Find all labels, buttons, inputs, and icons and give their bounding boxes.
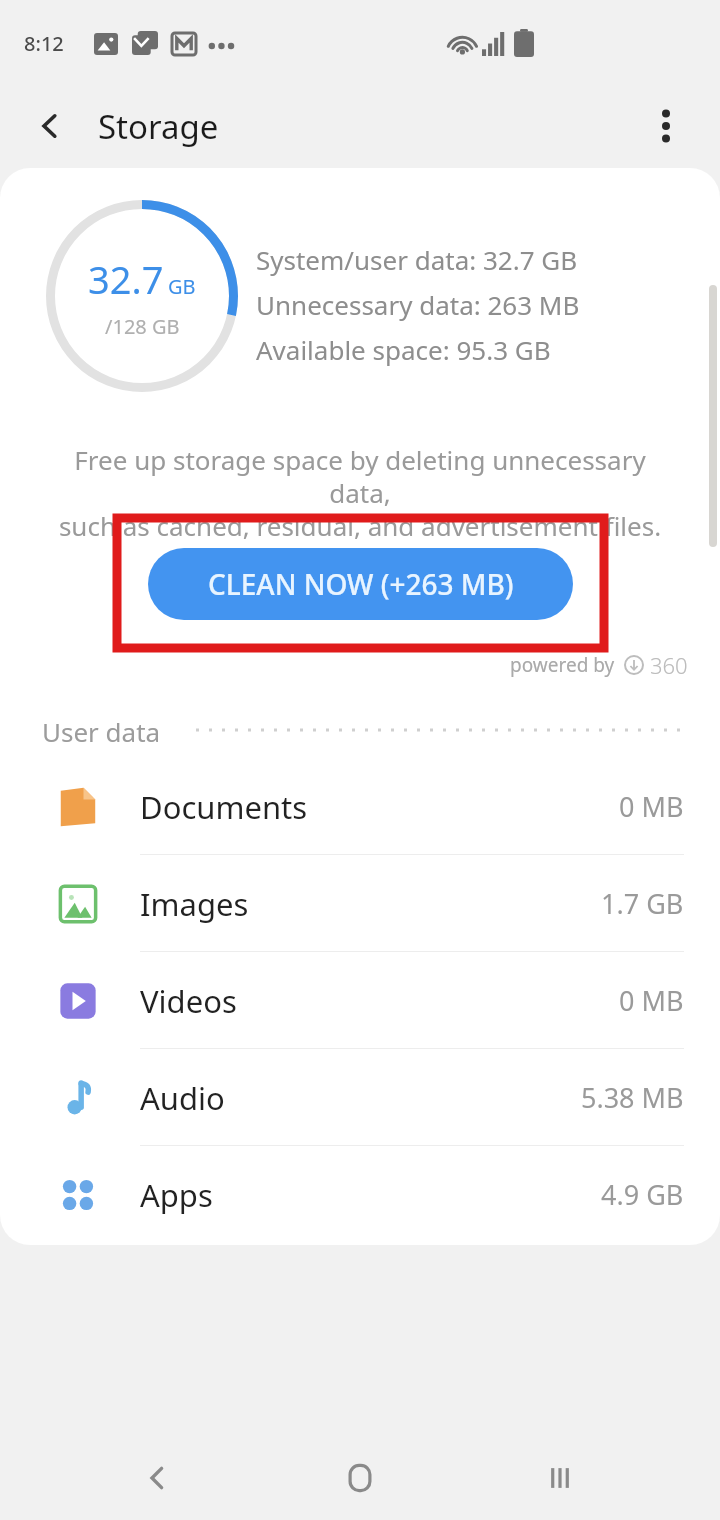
staticText: Available space: 95.3 GB xyxy=(256,332,551,367)
staticText: /128 GB xyxy=(105,313,180,340)
staticText: 5.38 MB xyxy=(581,1079,684,1116)
staticText: User data xyxy=(42,714,161,749)
staticText: CLEAN NOW (+263 MB) xyxy=(208,565,514,603)
button[interactable]: CLEAN NOW (+263 MB) xyxy=(148,548,573,620)
staticText: 4.9 GB xyxy=(601,1176,684,1213)
button[interactable]: Audio xyxy=(0,1049,720,1146)
button[interactable]: Videos xyxy=(0,952,720,1049)
button[interactable]: More options xyxy=(636,96,696,156)
staticText: Unnecessary data: 263 MB xyxy=(256,287,580,322)
staticText: Free up storage space by deleting unnece… xyxy=(58,442,662,544)
staticText: 0 MB xyxy=(619,982,684,1019)
staticText: 360 xyxy=(650,650,688,680)
staticText: powered by xyxy=(510,652,615,678)
button[interactable]: Back xyxy=(128,1448,188,1508)
button[interactable]: Home xyxy=(330,1448,390,1508)
staticText: 1.7 GB xyxy=(601,885,684,922)
staticText: GB xyxy=(168,273,196,300)
staticText: 32.7 xyxy=(88,253,164,305)
staticText: Documents xyxy=(140,786,308,828)
staticText: 8:12 xyxy=(24,30,64,57)
button[interactable]: Apps xyxy=(0,1146,720,1243)
staticText: Apps xyxy=(140,1174,213,1216)
button[interactable]: Recent apps xyxy=(530,1448,590,1508)
button[interactable]: Documents xyxy=(0,758,720,855)
staticText: Videos xyxy=(140,980,237,1022)
staticText: System/user data: 32.7 GB xyxy=(256,242,578,277)
staticText: Audio xyxy=(140,1077,225,1119)
button[interactable]: Images xyxy=(0,855,720,952)
staticText: Images xyxy=(140,883,249,925)
button[interactable]: Back xyxy=(22,98,78,154)
staticText: Storage xyxy=(98,104,219,149)
staticText: 0 MB xyxy=(619,788,684,825)
